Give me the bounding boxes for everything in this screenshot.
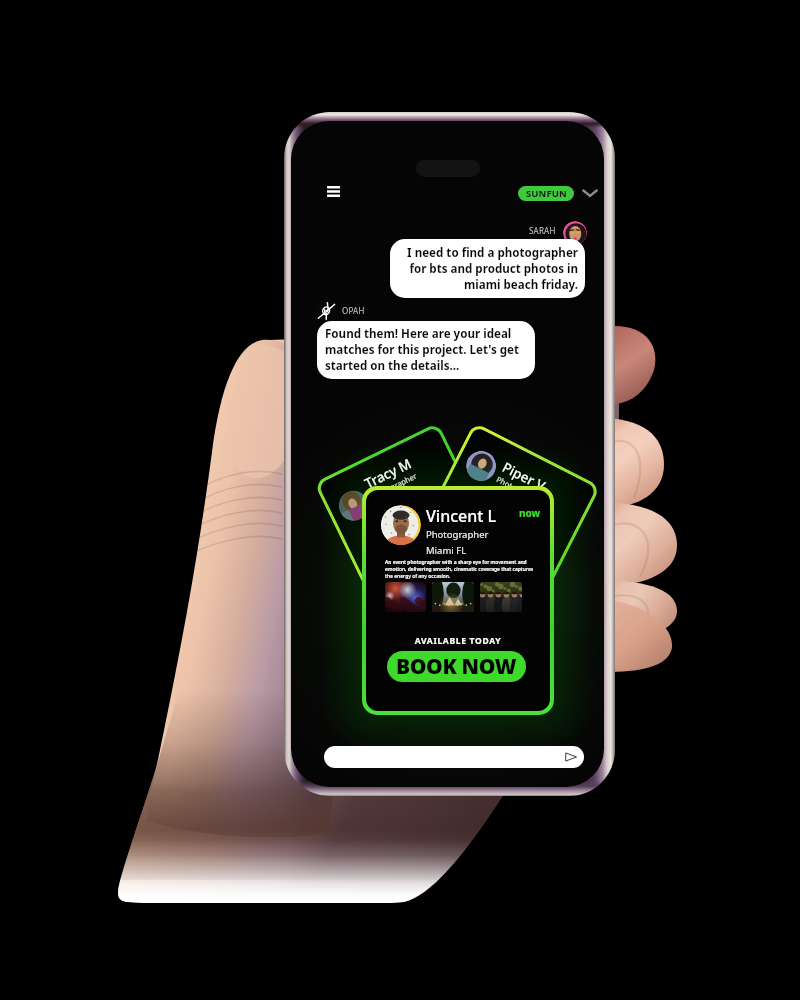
staticText: OPAH	[342, 305, 365, 316]
staticText: now	[519, 506, 541, 520]
button[interactable]: Piper V	[401, 426, 597, 634]
staticText: SUNFUN	[526, 187, 567, 200]
button[interactable]: I need to find a photographer for bts an…	[390, 239, 585, 298]
staticText: Piper V	[499, 458, 549, 495]
staticText: Photographer	[369, 470, 419, 501]
staticText: Miami FL	[426, 544, 467, 557]
staticText: Photographer	[495, 474, 544, 506]
button[interactable]: SUNFUN	[518, 186, 574, 201]
staticText: AVAILABLE TODAY	[366, 635, 550, 647]
staticText: An event photographer with a sharp eye f…	[385, 559, 537, 580]
button[interactable]: Found them! Here are your ideal matches …	[317, 321, 535, 379]
other: Send message	[565, 751, 577, 763]
button[interactable]: BOOK NOW	[387, 651, 526, 682]
button[interactable]: Tracy M	[318, 426, 508, 632]
staticText: BOOK NOW	[396, 652, 517, 681]
button[interactable]: Expand options	[581, 184, 599, 202]
button[interactable]: Send message	[324, 746, 584, 768]
staticText: Photographer	[426, 528, 489, 541]
staticText: I need to find a photographer for bts an…	[396, 245, 578, 293]
staticText: SARAH	[529, 225, 556, 236]
button[interactable]: Vincent L	[366, 490, 550, 711]
button[interactable]: Open menu	[325, 183, 342, 200]
staticText: Found them! Here are your ideal matches …	[325, 326, 528, 374]
staticText: Tracy M	[362, 454, 414, 492]
staticText: Vincent L	[426, 505, 497, 527]
